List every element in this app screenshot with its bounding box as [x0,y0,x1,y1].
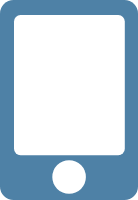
button[interactable]: Tablet device icon [0,0,138,200]
